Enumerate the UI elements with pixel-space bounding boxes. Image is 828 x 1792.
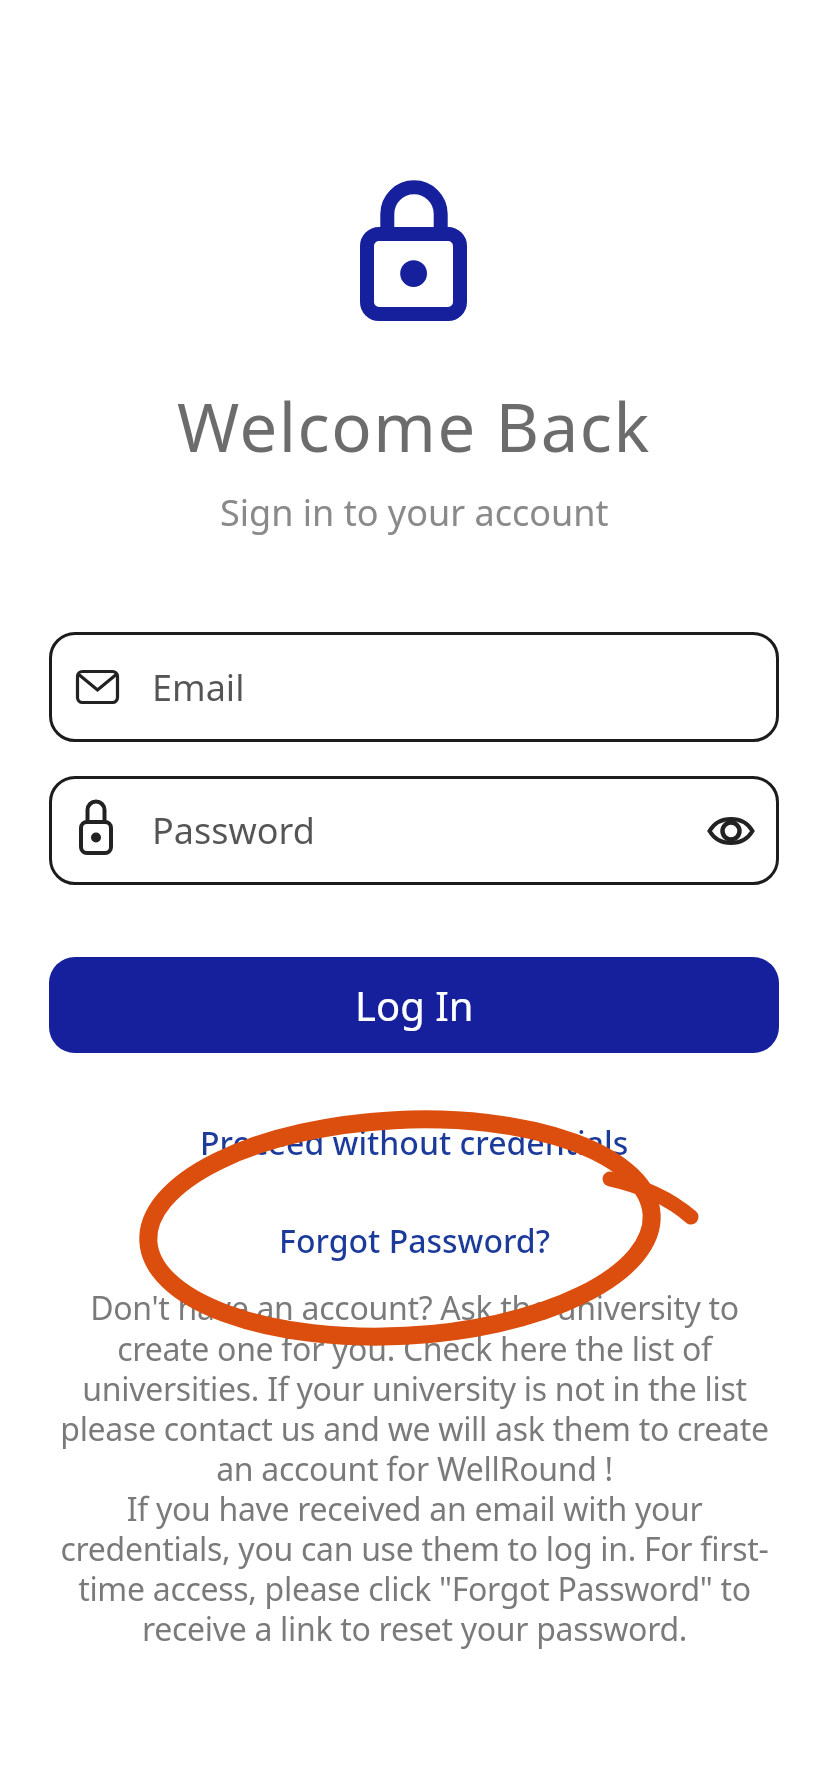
staticText: Welcome Back — [177, 380, 651, 471]
button[interactable] — [708, 814, 754, 848]
staticText: Password — [152, 806, 315, 855]
staticText: Forgot Password? — [279, 1219, 550, 1263]
staticText: Don't have an account? Ask the universit… — [60, 1286, 769, 1650]
button[interactable]: Forgot Password? — [0, 1219, 828, 1263]
button[interactable]: Password — [49, 776, 779, 885]
staticText: Sign in to your account — [220, 488, 609, 537]
button[interactable]: Email — [49, 632, 779, 742]
staticText: Proceed without credentials — [200, 1121, 629, 1165]
staticText: Email — [152, 663, 245, 712]
button[interactable]: Proceed without credentials — [0, 1121, 828, 1165]
staticText: Log In — [355, 978, 474, 1032]
button[interactable]: Log In — [49, 957, 779, 1053]
